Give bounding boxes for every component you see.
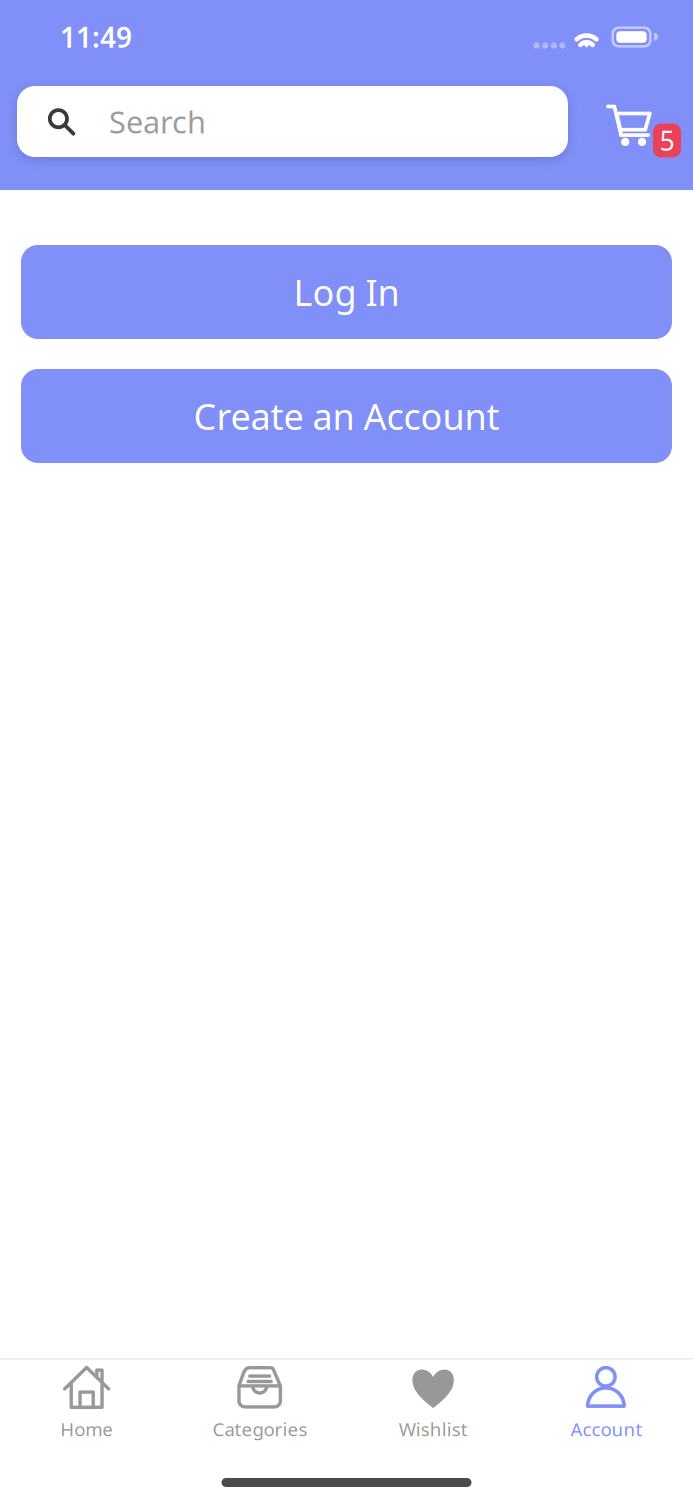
button[interactable]: Wishlist bbox=[346, 1362, 520, 1444]
staticText: Account bbox=[570, 1416, 642, 1441]
button[interactable]: Log In bbox=[21, 245, 672, 339]
button[interactable]: Account bbox=[520, 1362, 693, 1444]
staticText: 11:49 bbox=[60, 18, 132, 56]
staticText: 5 bbox=[659, 123, 674, 158]
button[interactable]: Create an Account bbox=[21, 369, 672, 463]
button[interactable]: Categories bbox=[173, 1362, 346, 1444]
staticText: Search bbox=[109, 101, 206, 142]
button[interactable]: Cart, 5 items bbox=[599, 86, 689, 157]
staticText: Categories bbox=[212, 1416, 307, 1441]
button[interactable]: Home bbox=[0, 1362, 173, 1444]
staticText: Wishlist bbox=[399, 1416, 468, 1441]
staticText: Home bbox=[60, 1416, 113, 1441]
staticText: Create an Account bbox=[193, 392, 499, 440]
staticText: Log In bbox=[293, 268, 399, 316]
